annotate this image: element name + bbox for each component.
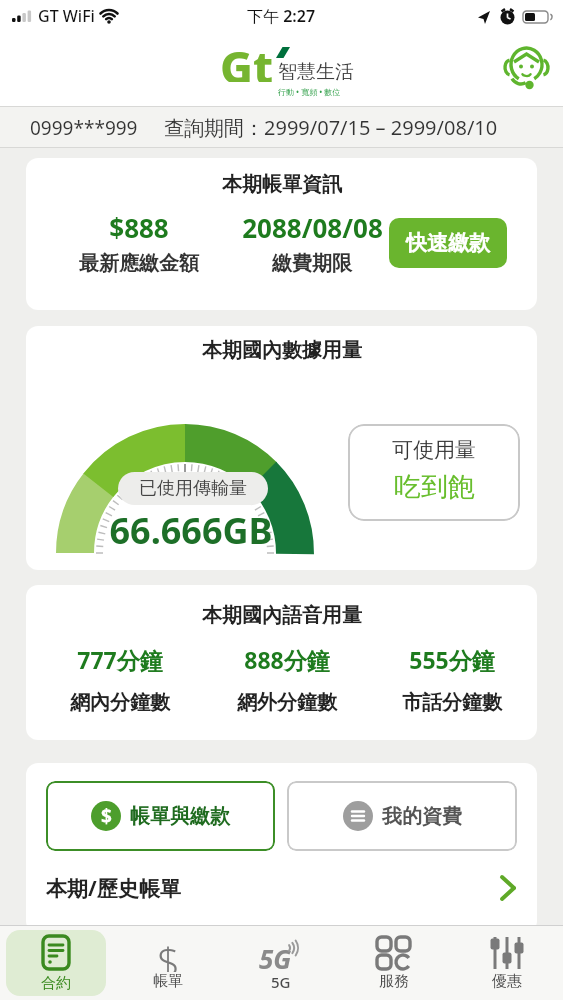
staticText: 5G bbox=[259, 941, 292, 975]
staticText: 網內分鐘數 bbox=[70, 690, 170, 715]
button[interactable]: 5G bbox=[224, 925, 337, 1000]
staticText: $ bbox=[157, 934, 180, 972]
staticText: 查詢期間：2999/07/15 – 2999/08/10 bbox=[164, 114, 498, 141]
staticText: 吃到飽 bbox=[394, 470, 475, 504]
staticText: 可使用量 bbox=[392, 437, 476, 463]
button[interactable]: $ bbox=[112, 925, 224, 1000]
staticText: 合約 bbox=[41, 974, 71, 993]
staticText: 本期國內語音用量 bbox=[202, 603, 362, 628]
button[interactable]: 可使用量 bbox=[348, 424, 520, 521]
staticText: 本期帳單資訊 bbox=[222, 172, 342, 197]
staticText: Gt bbox=[220, 36, 273, 82]
staticText: 555分鐘 bbox=[409, 644, 495, 675]
staticText: 網外分鐘數 bbox=[237, 690, 337, 715]
staticText: 888分鐘 bbox=[244, 644, 330, 675]
staticText: 帳單 bbox=[153, 972, 183, 991]
staticText: 777分鐘 bbox=[77, 644, 163, 675]
staticText: 最新應繳金額 bbox=[79, 251, 199, 276]
staticText: 智慧生活 bbox=[278, 60, 354, 84]
staticText: 66.666GB bbox=[109, 506, 273, 552]
staticText: 已使用傳輸量 bbox=[139, 477, 247, 500]
button[interactable]: 服務 bbox=[337, 925, 450, 1000]
staticText: 快速繳款 bbox=[406, 230, 490, 256]
staticText: 0999***999 bbox=[30, 115, 138, 141]
staticText: 本期國內數據用量 bbox=[202, 338, 362, 363]
button[interactable]: 優惠 bbox=[450, 925, 563, 1000]
staticText: $888 bbox=[109, 210, 169, 244]
button[interactable] bbox=[502, 45, 550, 93]
staticText: 行動 • 寬頻 • 數位 bbox=[278, 86, 341, 97]
button[interactable]: 合約 bbox=[0, 925, 112, 1000]
staticText: 優惠 bbox=[492, 972, 522, 991]
staticText: $ bbox=[101, 803, 112, 829]
staticText: 市話分鐘數 bbox=[402, 690, 502, 715]
button[interactable]: 本期/歷史帳單 bbox=[26, 866, 537, 910]
button[interactable]: 我的資費 bbox=[287, 781, 517, 851]
staticText: 2088/08/08 bbox=[242, 210, 383, 244]
staticText: GT WiFi bbox=[38, 5, 95, 27]
button[interactable]: $ bbox=[46, 781, 275, 851]
staticText: 繳費期限 bbox=[272, 251, 352, 276]
button[interactable]: 快速繳款 bbox=[389, 218, 507, 268]
staticText: 本期/歷史帳單 bbox=[46, 874, 181, 903]
staticText: 我的資費 bbox=[382, 804, 462, 829]
staticText: 服務 bbox=[379, 972, 409, 991]
staticText: 帳單與繳款 bbox=[130, 804, 230, 829]
staticText: 下午 2:27 bbox=[247, 5, 316, 27]
staticText: 5G bbox=[271, 972, 291, 992]
